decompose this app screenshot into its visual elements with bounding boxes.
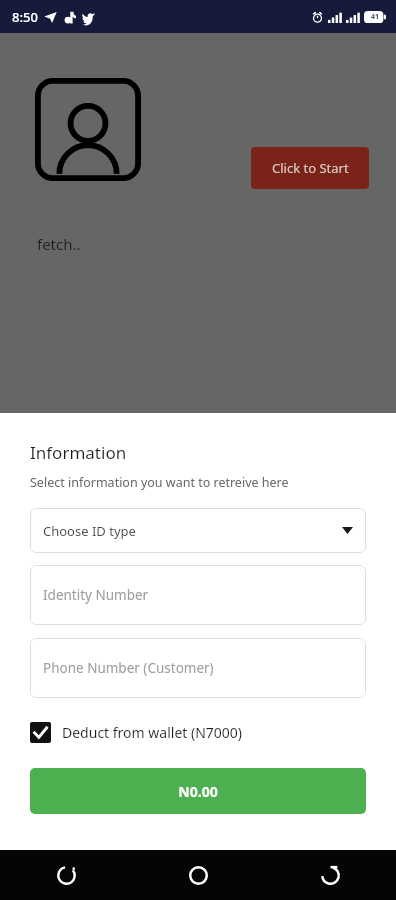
staticText: N0.00	[178, 782, 218, 801]
button[interactable]: Home	[174, 851, 222, 899]
button[interactable]: N0.00	[30, 768, 366, 814]
button[interactable]: Back	[306, 851, 354, 899]
staticText: fetch..	[37, 234, 81, 254]
staticText: Identity Number	[43, 586, 149, 604]
button[interactable]: Phone Number (Customer)	[30, 638, 366, 698]
staticText: Deduct from wallet (N7000)	[62, 723, 243, 742]
staticText: 8:50	[12, 8, 38, 26]
staticText: Click to Start	[272, 159, 349, 177]
staticText: Information	[30, 441, 127, 464]
button[interactable]: Choose ID type	[30, 508, 366, 553]
staticText: Phone Number (Customer)	[43, 659, 214, 677]
button[interactable]: Recents	[42, 851, 90, 899]
button[interactable]: Identity Number	[30, 565, 366, 625]
button[interactable]: Deduct from wallet (N7000)	[30, 718, 243, 747]
staticText: 41	[371, 12, 380, 22]
staticText: Select information you want to retreive …	[30, 474, 289, 491]
staticText: Choose ID type	[43, 522, 342, 540]
button[interactable]: Click to Start	[251, 147, 369, 189]
